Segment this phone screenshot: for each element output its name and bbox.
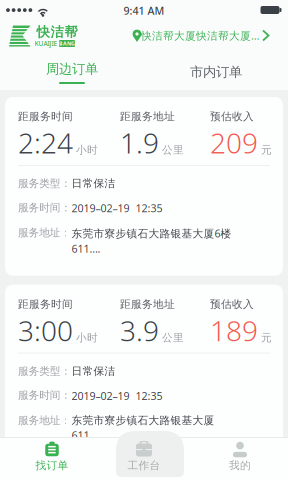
staticText: 预估收入 xyxy=(210,110,254,123)
button[interactable]: 工作台 xyxy=(96,437,192,480)
staticText: 快洁帮大厦快洁帮大厦… xyxy=(141,28,259,43)
button[interactable]: 找订单 xyxy=(0,437,96,480)
staticText: 日常保洁 xyxy=(71,177,115,190)
button[interactable]: 市内订单 xyxy=(144,54,288,90)
staticText: KUAIJIE xyxy=(34,39,57,48)
staticText: 小时 xyxy=(76,143,98,157)
staticText: 服务时间： xyxy=(18,389,71,402)
staticText: 服务地址： xyxy=(18,414,71,427)
staticText: 公里 xyxy=(162,143,184,157)
staticText: 3.9 xyxy=(120,312,159,349)
staticText: 189 xyxy=(210,312,258,349)
staticText: 209 xyxy=(210,124,258,161)
button[interactable]: 周边订单 xyxy=(0,54,144,90)
staticText: 公里 xyxy=(162,331,184,344)
staticText: 距服务地址 xyxy=(120,110,175,123)
staticText: 距服务时间 xyxy=(18,298,73,311)
staticText: 东莞市寮步镇石大路银基大厦 611…. xyxy=(71,414,214,442)
staticText: 2019–02–19 12:35 xyxy=(71,201,162,215)
staticText: 服务时间： xyxy=(18,201,71,214)
staticText: 市内订单 xyxy=(190,64,242,80)
button[interactable]: 我的 xyxy=(192,437,288,480)
staticText: 小时 xyxy=(76,331,98,344)
button[interactable]: 距服务时间 xyxy=(5,285,283,462)
staticText: 9:41 AM xyxy=(123,3,164,18)
staticText: 2019–02–19 12:35 xyxy=(71,389,162,403)
staticText: 距服务地址 xyxy=(120,298,175,311)
staticText: 服务地址： xyxy=(18,226,71,239)
staticText: 1.9 xyxy=(120,124,159,161)
staticText: 服务类型： xyxy=(18,177,71,190)
staticText: BANG xyxy=(59,40,75,47)
button[interactable]: 距服务时间 xyxy=(5,97,283,276)
staticText: 工作台 xyxy=(127,459,160,472)
staticText: 预估收入 xyxy=(210,298,254,311)
staticText: 我的 xyxy=(229,459,251,472)
staticText: 2:24 xyxy=(18,124,73,161)
button[interactable]: 快洁帮大厦快洁帮大厦… xyxy=(130,20,282,54)
staticText: 元 xyxy=(261,331,272,344)
staticText: 日常保洁 xyxy=(71,365,115,378)
staticText: 服务类型： xyxy=(18,365,71,378)
staticText: 距服务时间 xyxy=(18,110,73,123)
staticText: 元 xyxy=(261,143,272,157)
staticText: 3:00 xyxy=(18,312,73,349)
staticText: 东莞市寮步镇石大路银基大厦6楼 611…. xyxy=(71,226,231,256)
staticText: 周边订单 xyxy=(46,61,98,77)
staticText: 快洁帮 xyxy=(36,24,77,40)
staticText: 找订单 xyxy=(35,459,68,472)
